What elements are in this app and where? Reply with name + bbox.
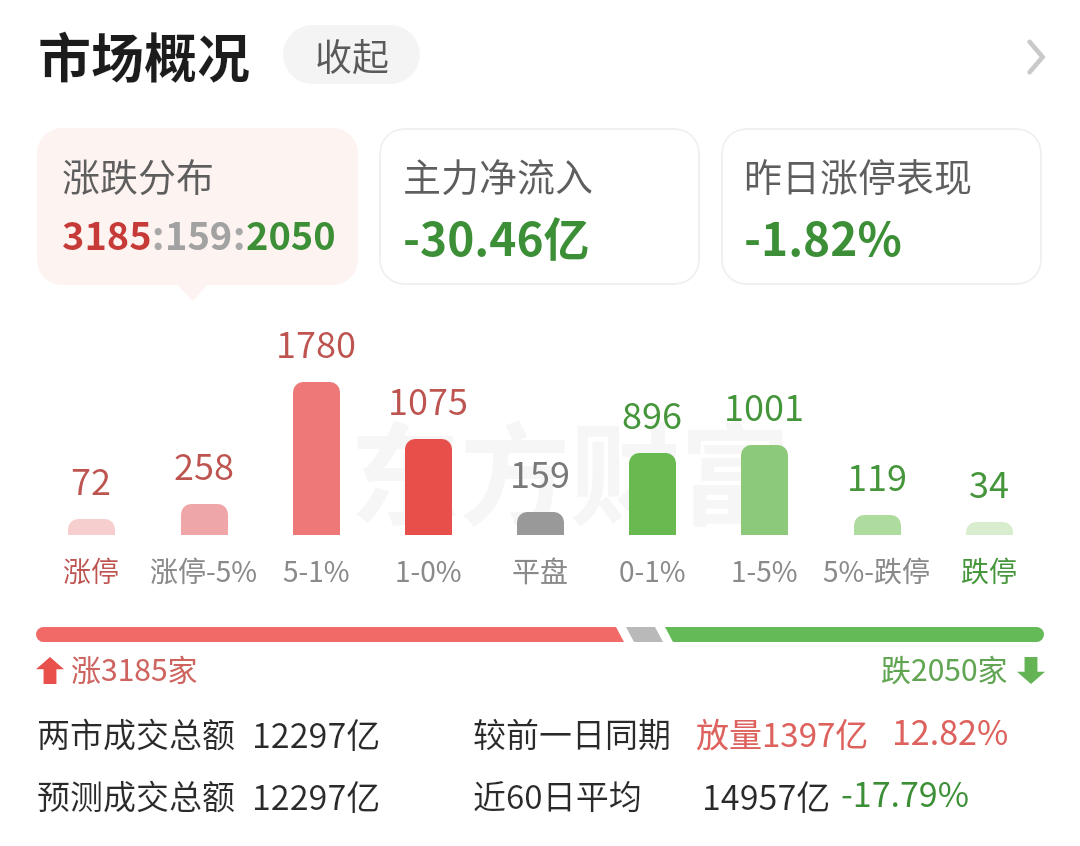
staticText: 跌2050家 (881, 646, 1008, 689)
button[interactable] (30, 770, 450, 828)
staticText: 14957亿 (702, 771, 831, 820)
staticText: 1001 (724, 379, 804, 431)
staticText: 较前一日同期 (473, 709, 671, 757)
staticText: : (233, 206, 246, 261)
button[interactable]: 查看更多 市场概况 (1002, 25, 1066, 89)
staticText: -1.82% (744, 203, 902, 270)
button[interactable] (466, 770, 1046, 828)
staticText: -17.79% (841, 768, 970, 817)
button[interactable]: 5-1% 1780只 (260, 320, 372, 590)
staticText: 东方财富 (350, 388, 790, 547)
button[interactable]: 平盘 159只 (484, 320, 596, 590)
staticText: 涨3185家 (71, 646, 198, 689)
staticText: 近60日平均 (473, 771, 642, 819)
staticText: 涨停-5% (150, 550, 258, 591)
staticText: 258 (174, 438, 234, 490)
button[interactable] (30, 14, 266, 98)
staticText: 34 (969, 456, 1009, 508)
button[interactable]: 1-0% 1075只 (372, 320, 484, 590)
staticText: 跌停 (961, 550, 1018, 591)
staticText: 72 (71, 453, 111, 505)
staticText: -30.46亿 (403, 203, 590, 270)
button[interactable]: 跌停 34只 (933, 320, 1045, 590)
button[interactable]: 涨停-5% 258只 (148, 320, 260, 590)
staticText: 5-1% (283, 550, 350, 591)
staticText: 0-1% (619, 550, 686, 591)
staticText: 市场概况 (38, 17, 250, 94)
button[interactable]: 5%-跌停 119只 (821, 320, 933, 590)
staticText: 12297亿 (252, 709, 381, 758)
staticText: 昨日涨停表现 (744, 147, 973, 202)
staticText: 119 (847, 449, 907, 501)
button[interactable] (30, 708, 450, 766)
staticText: 放量1397亿 (696, 709, 869, 757)
staticText: 3185 (62, 206, 152, 261)
staticText: 12.82% (892, 706, 1009, 755)
staticText: 2050 (246, 206, 336, 261)
staticText: 涨停 (63, 550, 120, 591)
button[interactable]: 涨停 72只 (35, 320, 147, 590)
staticText: : (152, 206, 165, 261)
staticText: 主力净流入 (403, 147, 594, 202)
staticText: 896 (622, 387, 682, 439)
button[interactable]: 主力净流入 (379, 128, 700, 285)
button[interactable]: 涨跌分布 (37, 128, 358, 285)
staticText: 5%-跌停 (823, 550, 931, 591)
button[interactable] (466, 708, 1046, 766)
staticText: 12297亿 (252, 771, 381, 820)
staticText: 涨跌分布 (62, 147, 215, 202)
button[interactable]: 1-5% 1001只 (708, 320, 820, 590)
staticText: 收起 (315, 28, 389, 82)
button[interactable]: 0-1% 896只 (596, 320, 708, 590)
staticText: 1-0% (395, 550, 462, 591)
staticText: 两市成交总额 (37, 709, 235, 757)
staticText: 平盘 (512, 550, 569, 591)
staticText: 1780 (276, 316, 356, 368)
staticText: 1-5% (731, 550, 798, 591)
staticText: 159 (510, 446, 570, 498)
staticText: 1075 (388, 373, 468, 425)
staticText: 预测成交总额 (37, 771, 235, 819)
button[interactable]: 收起 (283, 25, 420, 84)
button[interactable]: 昨日涨停表现 (721, 128, 1042, 285)
staticText: 159 (165, 206, 233, 261)
